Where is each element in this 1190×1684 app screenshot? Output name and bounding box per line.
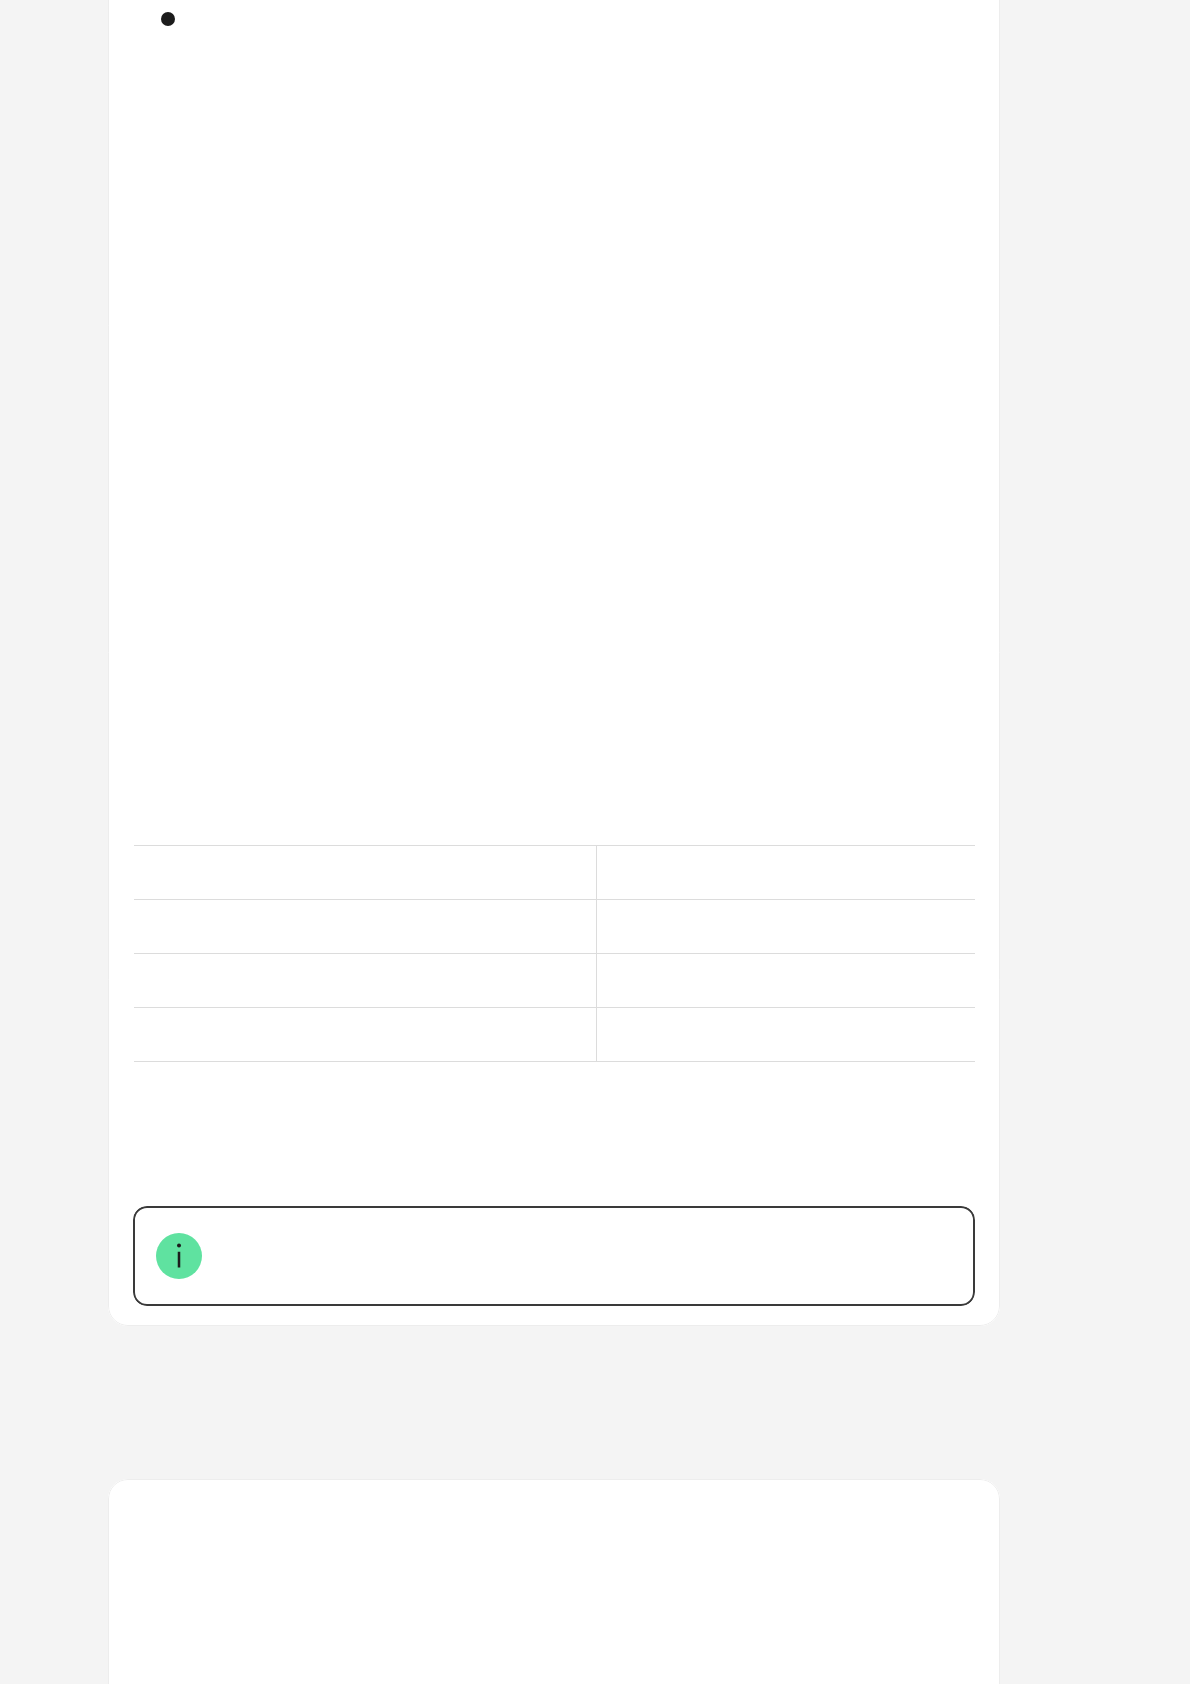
button[interactable]: Information — [133, 1206, 975, 1306]
button[interactable]: Information — [108, 0, 1000, 1326]
other: Information — [156, 1233, 202, 1279]
